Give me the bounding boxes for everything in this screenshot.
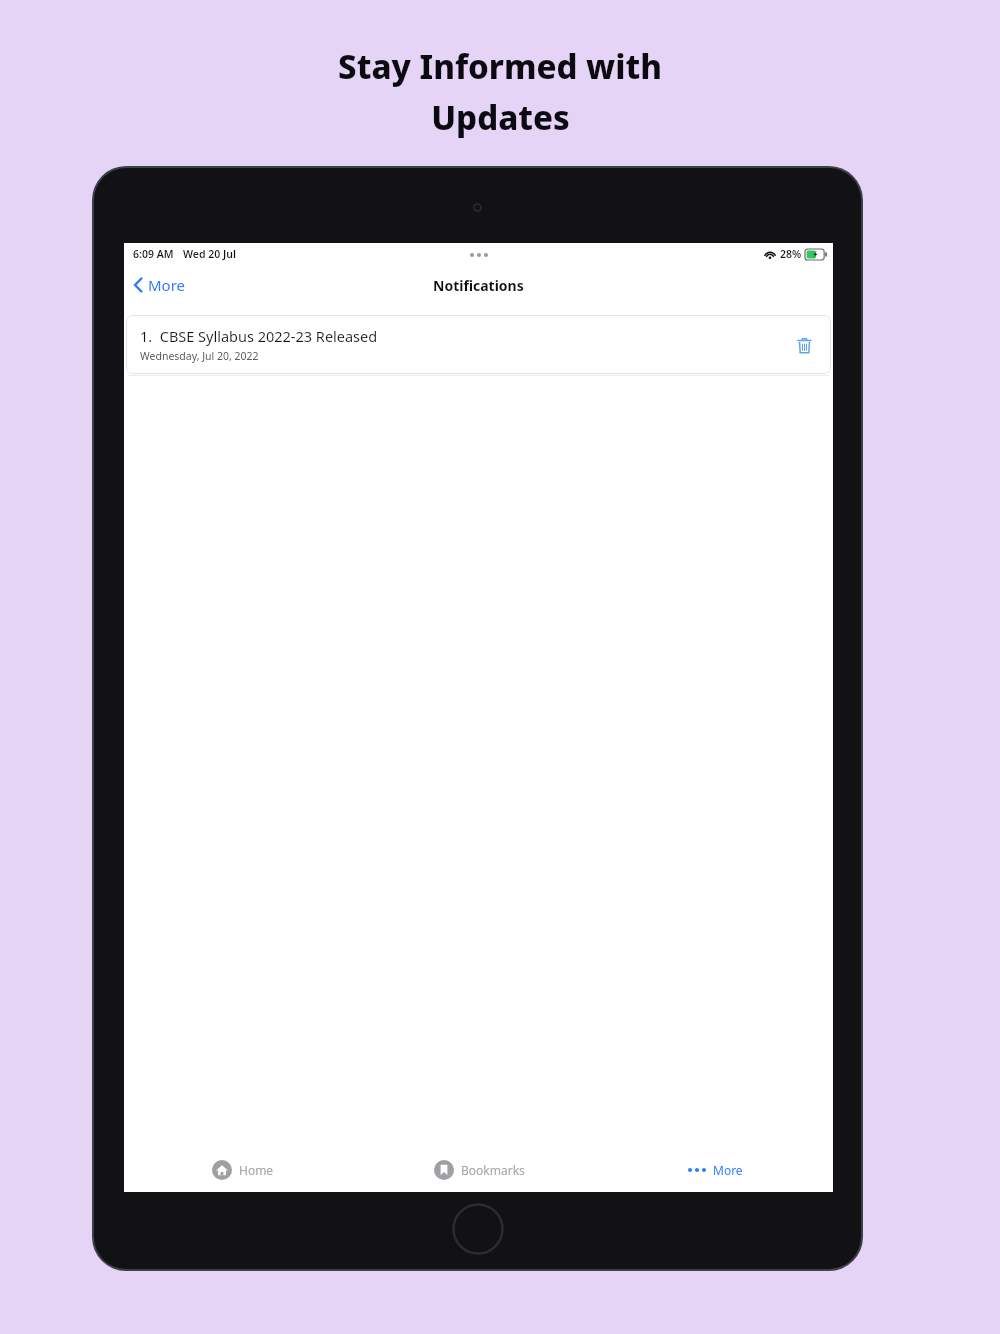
- button[interactable]: More: [124, 269, 196, 301]
- staticText: Bookmarks: [461, 1162, 525, 1178]
- staticText: 28%: [780, 247, 802, 261]
- staticText: More: [148, 275, 186, 295]
- staticText: More: [713, 1162, 743, 1178]
- staticText: Notifications: [433, 276, 524, 295]
- staticText: Stay Informed with: [338, 44, 662, 89]
- staticText: Wednesday, Jul 20, 2022: [140, 349, 259, 363]
- button[interactable]: Delete notification: [791, 332, 817, 358]
- staticText: Home: [239, 1162, 274, 1178]
- other: Home button: [452, 1203, 504, 1255]
- button[interactable]: Bookmarks: [426, 1154, 533, 1186]
- staticText: 6:09 AM: [133, 247, 174, 261]
- staticText: Wed 20 Jul: [183, 247, 236, 261]
- staticText: 1. CBSE Syllabus 2022-23 Released: [140, 326, 378, 346]
- button[interactable]: Home: [204, 1154, 282, 1186]
- button[interactable]: More: [680, 1156, 751, 1184]
- button[interactable]: 1. CBSE Syllabus 2022-23 Released: [126, 315, 831, 374]
- staticText: Updates: [431, 95, 570, 140]
